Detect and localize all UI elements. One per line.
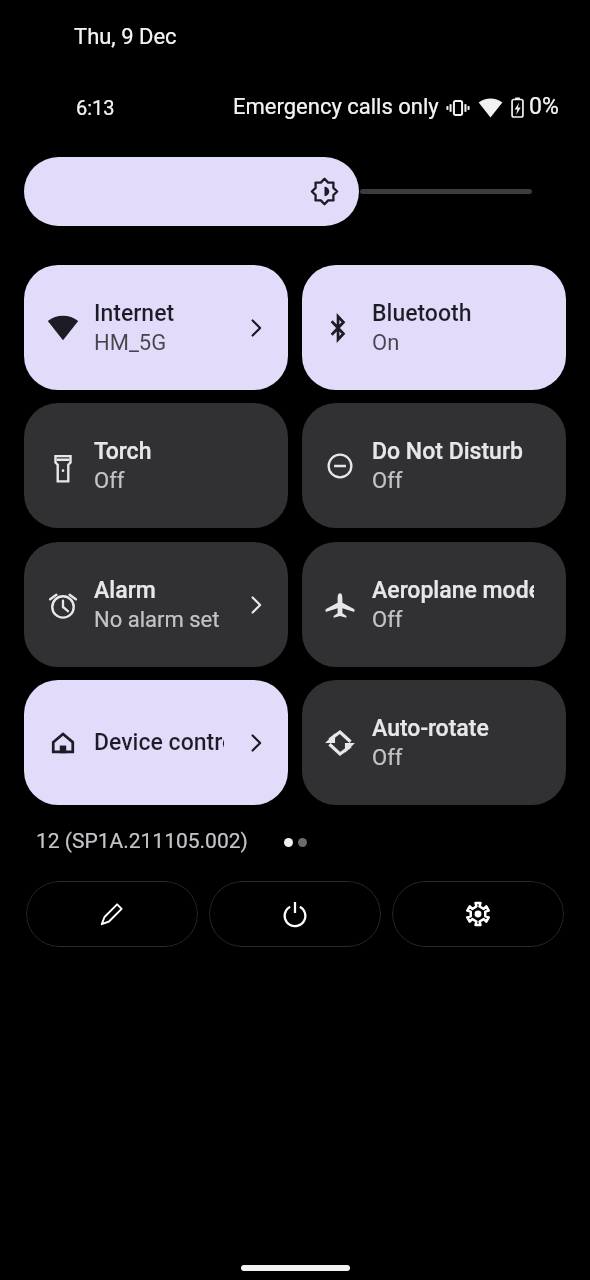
staticText: Torch	[94, 438, 152, 465]
button[interactable]: Aeroplane mode	[302, 542, 566, 667]
staticText: Do Not Disturb	[372, 438, 523, 465]
staticText: 0%	[529, 93, 559, 120]
button[interactable]: Torch	[24, 403, 288, 528]
button[interactable]: Brightness	[24, 157, 566, 226]
staticText: Emergency calls only	[233, 94, 439, 120]
button[interactable]: Device controls	[24, 680, 288, 805]
button[interactable]: Power	[209, 881, 381, 947]
button[interactable]: Internet	[24, 265, 288, 390]
staticText: 12 (SP1A.211105.002)	[36, 829, 248, 854]
staticText: Bluetooth	[372, 300, 472, 327]
staticText: No alarm set	[94, 607, 220, 633]
button[interactable]: Bluetooth	[302, 265, 566, 390]
staticText: Auto-rotate	[372, 715, 489, 742]
button[interactable]: Alarm	[24, 542, 288, 667]
staticText: Off	[372, 607, 403, 633]
staticText: Device controls	[94, 729, 224, 756]
button[interactable]: Edit tiles	[26, 881, 198, 947]
staticText: Internet	[94, 300, 175, 327]
button[interactable]: Settings	[392, 881, 564, 947]
staticText: 6:13	[76, 96, 115, 119]
staticText: Off	[372, 468, 403, 494]
staticText: HM_5G	[94, 330, 167, 356]
staticText: Off	[94, 468, 125, 494]
staticText: Aeroplane mode	[372, 577, 534, 604]
staticText: Off	[372, 745, 403, 771]
button[interactable]: Auto-rotate	[302, 680, 566, 805]
staticText: On	[372, 330, 400, 356]
button[interactable]: Do Not Disturb	[302, 403, 566, 528]
staticText: Alarm	[94, 577, 156, 604]
staticText: Thu, 9 Dec	[74, 24, 177, 50]
